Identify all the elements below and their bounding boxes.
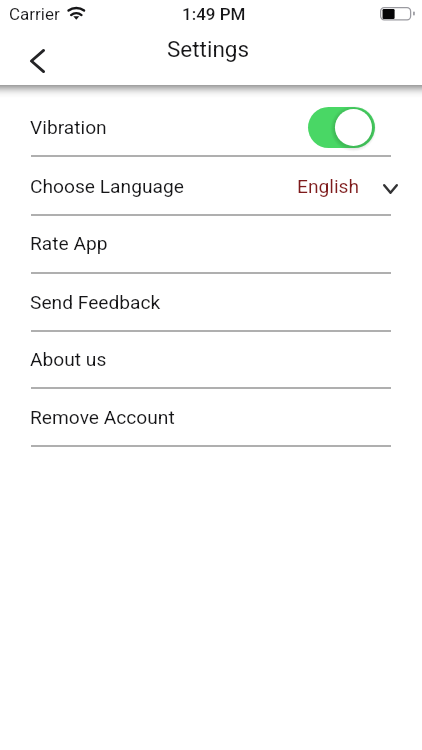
staticText: About us xyxy=(30,348,107,371)
staticText: Send Feedback xyxy=(30,291,161,314)
button[interactable]: Expand language list xyxy=(376,176,404,202)
staticText: Remove Account xyxy=(30,406,175,429)
button[interactable]: Back xyxy=(19,45,56,77)
button[interactable]: Vibration toggle xyxy=(308,107,375,148)
button[interactable]: Remove Account xyxy=(0,389,422,447)
staticText: Choose Language xyxy=(30,175,184,198)
button[interactable]: Send Feedback xyxy=(0,274,422,332)
staticText: English xyxy=(297,175,360,198)
staticText: Rate App xyxy=(30,232,108,255)
button[interactable]: Vibration xyxy=(0,97,422,157)
staticText: Vibration xyxy=(30,116,107,139)
button[interactable]: Rate App xyxy=(0,215,422,274)
button[interactable]: About us xyxy=(0,331,422,389)
staticText: 1:49 PM xyxy=(182,4,246,24)
button[interactable]: Choose Language xyxy=(0,157,422,216)
staticText: Carrier xyxy=(9,4,60,24)
staticText: Settings xyxy=(0,36,419,62)
